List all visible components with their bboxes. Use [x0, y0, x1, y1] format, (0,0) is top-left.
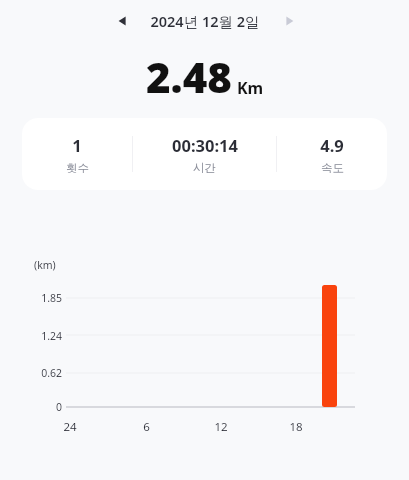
- staticText: 00:30:14: [172, 134, 238, 156]
- staticText: 6: [143, 419, 150, 435]
- staticText: 속도: [321, 161, 344, 175]
- staticText: 1: [72, 134, 82, 156]
- staticText: (km): [34, 258, 56, 272]
- staticText: 24: [63, 419, 77, 435]
- staticText: 0.62: [41, 366, 62, 380]
- staticText: 2024년 12월 2일: [150, 11, 260, 31]
- button[interactable]: Previous day: [112, 10, 134, 32]
- staticText: 1.24: [41, 329, 62, 343]
- staticText: 18: [289, 419, 303, 435]
- button[interactable]: 1: [22, 118, 387, 190]
- button[interactable]: Next day: [278, 10, 300, 32]
- staticText: 1.85: [41, 291, 62, 305]
- staticText: 12: [214, 419, 228, 435]
- staticText: 시간: [193, 161, 216, 175]
- staticText: Km: [237, 77, 264, 99]
- staticText: 0: [55, 400, 62, 414]
- staticText: 2.48: [146, 48, 232, 105]
- staticText: 4.9: [320, 134, 344, 156]
- staticText: 횟수: [66, 161, 89, 175]
- button[interactable]: 2024년 12월 2일: [140, 8, 270, 34]
